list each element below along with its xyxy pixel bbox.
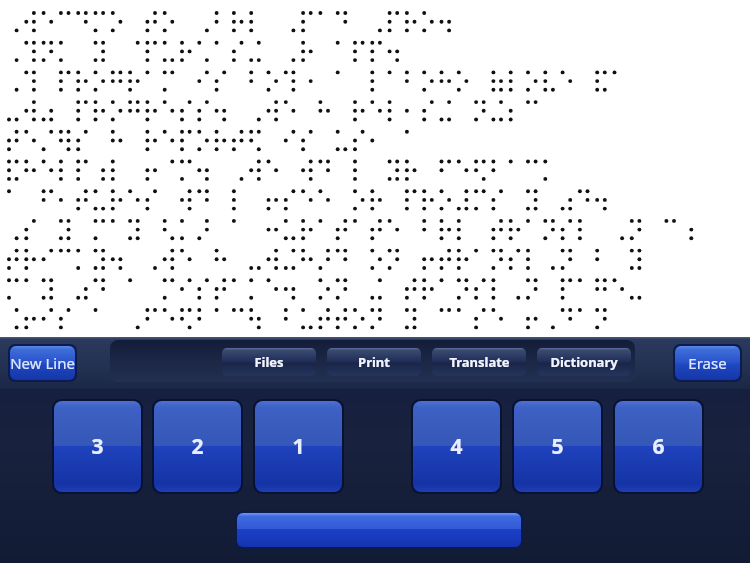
- button[interactable]: 5: [514, 401, 601, 492]
- button[interactable]: Translate: [432, 348, 526, 376]
- staticText: Print: [358, 353, 390, 371]
- button[interactable]: Dictionary: [537, 348, 631, 376]
- button[interactable]: 1: [255, 401, 342, 492]
- button[interactable]: Erase: [675, 346, 740, 380]
- button[interactable]: 3: [54, 401, 141, 492]
- button[interactable]: Print: [327, 348, 421, 376]
- button[interactable]: Files: [222, 348, 316, 376]
- staticText: Files: [254, 353, 284, 371]
- staticText: Translate: [449, 353, 510, 371]
- staticText: 3: [91, 432, 104, 461]
- button[interactable]: Space: [237, 513, 521, 547]
- staticText: 6: [652, 432, 665, 461]
- staticText: 4: [450, 432, 463, 461]
- button[interactable]: New Line: [10, 346, 75, 380]
- staticText: 2: [191, 432, 204, 461]
- staticText: 1: [292, 432, 305, 461]
- button[interactable]: 4: [413, 401, 500, 492]
- staticText: 5: [551, 432, 564, 461]
- staticText: New Line: [10, 353, 75, 373]
- button[interactable]: 2: [154, 401, 241, 492]
- button[interactable]: 6: [615, 401, 702, 492]
- staticText: Dictionary: [550, 353, 618, 371]
- staticText: Erase: [688, 353, 727, 373]
